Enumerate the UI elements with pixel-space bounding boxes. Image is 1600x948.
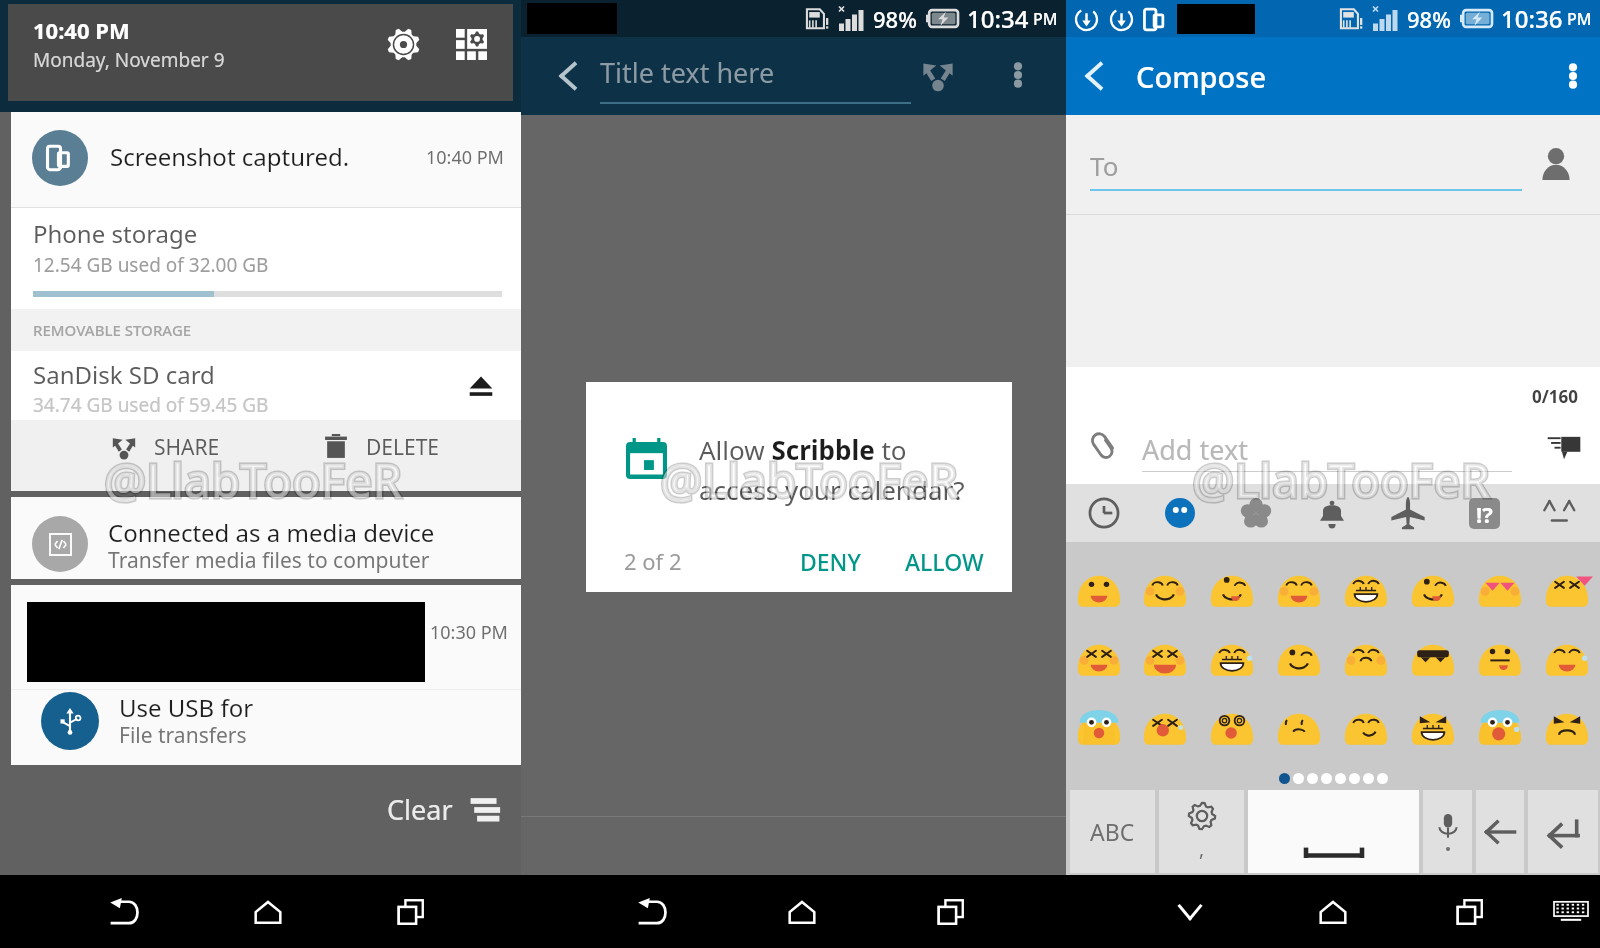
button[interactable]: Send (1536, 417, 1592, 473)
button[interactable]: Screenshot captured. (11, 112, 521, 207)
staticText: REMOVABLE STORAGE (33, 320, 192, 340)
button[interactable]: Key (1423, 790, 1472, 873)
staticText: @LlabTooFeR (1192, 448, 1491, 512)
staticText: Use USB for (119, 691, 254, 724)
button[interactable]: Key (1528, 790, 1598, 873)
staticText: Phone storage (33, 217, 198, 250)
staticText: Connected as a media device (108, 516, 435, 549)
staticText: Transfer media files to computer (108, 546, 430, 575)
staticText: @LlabTooFeR (660, 448, 959, 512)
staticText: access your calendar? (699, 472, 965, 507)
staticText: ALLOW (905, 546, 984, 577)
button[interactable]: Emoji category (1142, 484, 1218, 542)
staticText: 0/160 (1532, 385, 1578, 408)
button[interactable]: Hide keyboard (1164, 886, 1216, 938)
button[interactable]: Emoji category (1522, 484, 1598, 542)
staticText: DELETE (366, 433, 440, 462)
button[interactable]: Connected as a media device (11, 497, 521, 579)
staticText: @LlabTooFeR (660, 448, 959, 512)
staticText: To (1090, 148, 1119, 183)
button[interactable]: Clear (381, 785, 509, 834)
button[interactable]: Key (1476, 790, 1524, 873)
staticText: , (1199, 836, 1205, 862)
button[interactable]: Eject (463, 368, 499, 404)
button[interactable]: 10:30 PM (11, 585, 521, 765)
button[interactable]: More options (991, 48, 1045, 102)
staticText: 10:30 PM (430, 620, 508, 645)
staticText: !? (1476, 499, 1493, 529)
staticText: PM (1033, 8, 1058, 30)
button[interactable]: Recents (925, 886, 977, 938)
button[interactable]: Emoji category (1294, 484, 1370, 542)
button[interactable]: Contacts (1533, 141, 1579, 187)
staticText: PM (1567, 8, 1592, 30)
button[interactable]: SHARE (111, 427, 220, 467)
staticText: Add text (1142, 431, 1248, 468)
staticText: DENY (800, 546, 861, 577)
button[interactable]: Emoji category (1370, 484, 1446, 542)
staticText: @LlabTooFeR (104, 448, 403, 512)
staticText: 10:40 PM (33, 15, 130, 45)
staticText: Allow Scribble to (699, 432, 907, 467)
staticText: 12.54 GB used of 32.00 GB (33, 252, 269, 278)
button[interactable]: Settings (380, 21, 426, 67)
staticText: @LlabTooFeR (1192, 448, 1491, 512)
staticText: SanDisk SD card (33, 358, 215, 391)
staticText: 98% (1407, 4, 1451, 34)
staticText: 10:40 PM (426, 145, 504, 170)
button[interactable]: DENY (786, 538, 875, 585)
button[interactable]: Phone storage (11, 208, 521, 309)
button[interactable]: More options (1546, 49, 1600, 103)
button[interactable]: Key (1070, 790, 1155, 873)
button[interactable]: DELETE (323, 427, 440, 467)
button[interactable]: Back (627, 886, 679, 938)
staticText: Title text here (600, 54, 775, 91)
staticText: File transfers (119, 721, 247, 750)
button[interactable]: Emoji category (1066, 484, 1142, 542)
button[interactable]: Emoji category (1218, 484, 1294, 542)
staticText: 10:34 (967, 2, 1029, 35)
button[interactable]: ALLOW (891, 538, 998, 585)
button[interactable]: Home (242, 886, 294, 938)
staticText: 34.74 GB used of 59.45 GB (33, 392, 269, 418)
button[interactable]: Share (911, 48, 965, 102)
staticText: Compose (1136, 57, 1267, 96)
button[interactable]: SanDisk SD card (11, 351, 521, 420)
button[interactable]: Back (543, 51, 593, 101)
staticText: ABC (1090, 816, 1135, 847)
staticText: 98% (873, 4, 917, 34)
button[interactable]: Attach (1076, 419, 1130, 473)
staticText: 10:36 (1501, 2, 1563, 35)
button[interactable]: Key (1248, 790, 1419, 873)
button[interactable]: Back (1066, 48, 1122, 104)
staticText: Clear (387, 791, 453, 828)
staticText: @LlabTooFeR (104, 448, 403, 512)
button[interactable]: Recents (385, 886, 437, 938)
button[interactable]: Keyboard (1545, 886, 1597, 938)
staticText: 2 of 2 (624, 546, 682, 576)
staticText: Monday, November 9 (33, 47, 225, 73)
button[interactable]: Emoji category (1446, 484, 1522, 542)
staticText: SHARE (154, 433, 220, 462)
button[interactable]: Home (776, 886, 828, 938)
button[interactable]: Quick settings (448, 21, 494, 67)
button[interactable]: Home (1307, 886, 1359, 938)
staticText: Screenshot captured. (110, 140, 350, 173)
button[interactable]: Recents (1444, 886, 1496, 938)
button[interactable]: Back (99, 886, 151, 938)
button[interactable]: Key (1159, 790, 1244, 873)
